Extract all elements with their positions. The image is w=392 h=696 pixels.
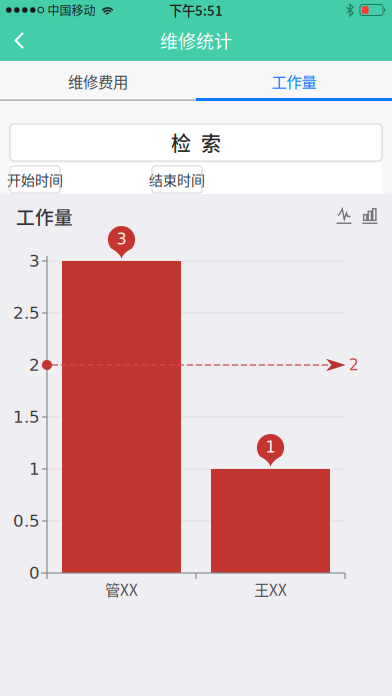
- staticText: 维修统计: [160, 27, 232, 54]
- staticText: 1: [29, 459, 40, 479]
- staticText: 下午5:51: [169, 0, 223, 20]
- staticText: 3: [116, 230, 126, 248]
- staticText: 0.5: [13, 511, 40, 531]
- staticText: 1.5: [13, 407, 40, 427]
- staticText: 中国移动: [48, 1, 96, 19]
- staticText: 维修费用: [68, 70, 128, 92]
- staticText: 开始时间: [7, 169, 63, 190]
- staticText: 王XX: [254, 578, 287, 600]
- staticText: 管XX: [105, 578, 138, 600]
- staticText: 2: [349, 356, 359, 374]
- staticText: 2.5: [13, 303, 40, 323]
- button[interactable]: 开始时间: [10, 166, 60, 193]
- button[interactable]: Back: [0, 20, 58, 61]
- staticText: 2: [29, 355, 40, 375]
- button[interactable]: Bar chart: [359, 204, 381, 228]
- button[interactable]: 结束时间: [152, 166, 202, 193]
- staticText: 工作量: [16, 202, 73, 229]
- button[interactable]: 检 索: [10, 124, 382, 161]
- staticText: 工作量: [271, 70, 316, 92]
- staticText: 0: [29, 563, 40, 583]
- button[interactable]: 维修费用: [0, 61, 196, 101]
- staticText: 结束时间: [149, 169, 205, 190]
- staticText: 检 索: [171, 128, 221, 157]
- button[interactable]: Line chart: [333, 204, 355, 228]
- staticText: 3: [29, 251, 40, 271]
- staticText: 1: [265, 438, 275, 456]
- button[interactable]: 工作量: [196, 61, 392, 101]
